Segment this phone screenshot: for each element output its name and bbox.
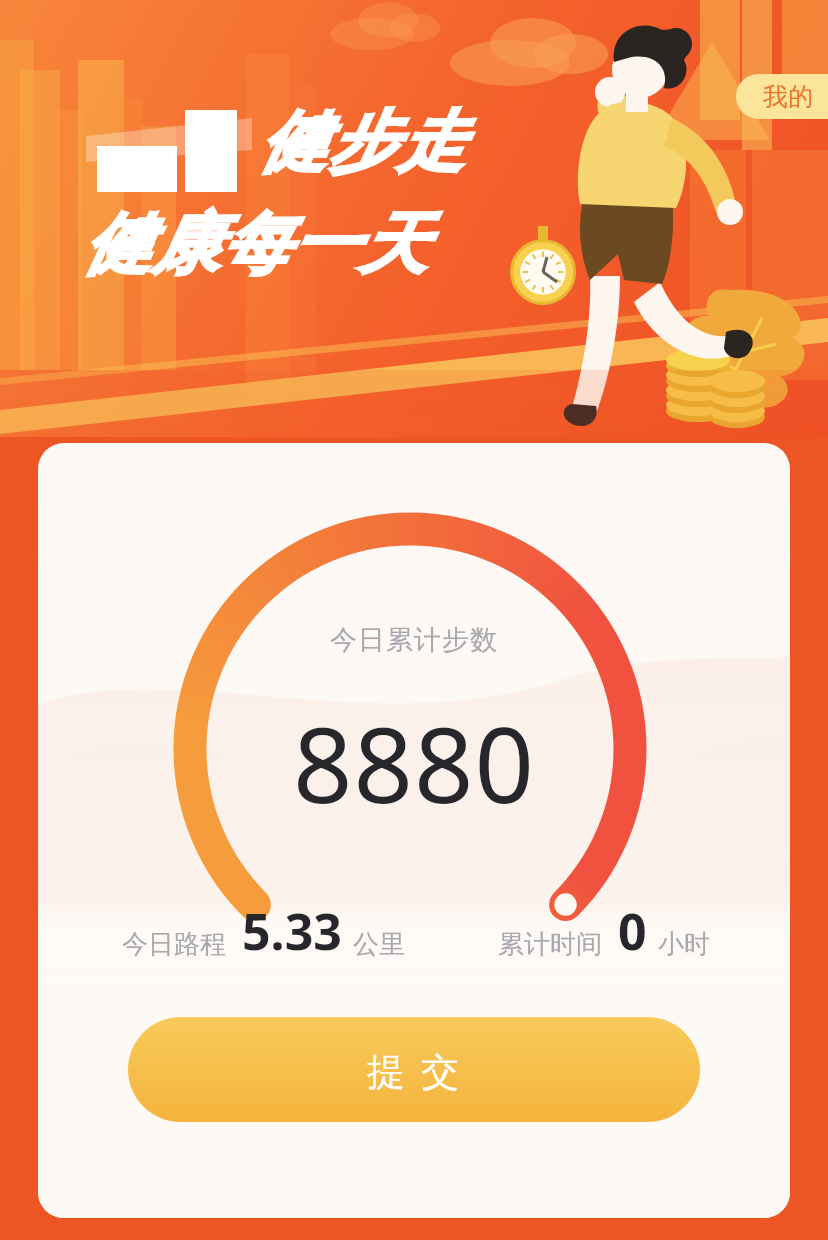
- button[interactable]: 累计时间: [498, 897, 710, 965]
- button[interactable]: 今日路程: [122, 897, 405, 965]
- staticText: 小时: [658, 928, 710, 961]
- staticText: 8880: [38, 692, 790, 834]
- staticText: 提 交: [367, 1044, 462, 1096]
- staticText: 公里: [353, 928, 405, 961]
- staticText: 5.33: [242, 897, 342, 965]
- staticText: 健步走: [258, 100, 465, 184]
- staticText: 健康每一天: [82, 202, 427, 286]
- button[interactable]: 提 交: [128, 1017, 700, 1122]
- button[interactable]: 我的: [736, 74, 828, 119]
- staticText: 0: [618, 897, 647, 965]
- staticText: 今日累计步数: [38, 623, 790, 657]
- staticText: 今日路程: [122, 928, 226, 961]
- staticText: 我的: [763, 81, 813, 112]
- staticText: 累计时间: [498, 928, 602, 961]
